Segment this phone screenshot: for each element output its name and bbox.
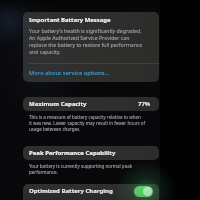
staticText: This is a measure of battery capacity re… [29,114,146,132]
button[interactable]: More about service options... [23,64,159,82]
staticText: 77% [138,100,151,108]
button[interactable]: Peak Performance Capability [23,146,159,160]
button[interactable]: Optimized Battery Charging [23,184,159,198]
staticText: Optimized Battery Charging [29,187,113,195]
staticText: Your battery is currently supporting nor… [29,163,133,175]
staticText: Important Battery Message [29,16,111,24]
button[interactable]: Maximum Capacity [23,97,159,111]
staticText: Maximum Capacity [29,100,87,108]
staticText: Peak Performance Capability [29,149,116,157]
staticText: Your battery's health is significantly d… [29,27,143,55]
staticText: More about service options... [29,69,110,77]
